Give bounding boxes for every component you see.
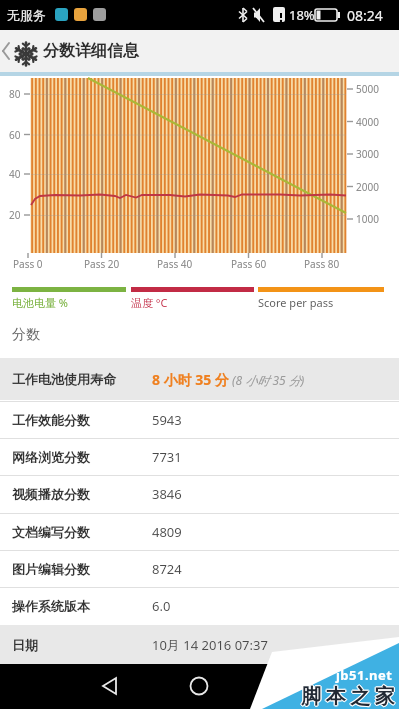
staticText: 5000 (356, 82, 379, 96)
staticText: 脚本之家 (299, 685, 397, 709)
staticText: 分数 (12, 326, 40, 344)
staticText: 无服务 (7, 7, 46, 23)
button[interactable] (270, 668, 306, 704)
staticText: 8 小时 35 分 (152, 370, 229, 389)
staticText: 5943 (152, 411, 182, 429)
staticText: 日期 (12, 637, 38, 653)
button[interactable]: 工作电池使用寿命 (0, 358, 399, 400)
staticText: 60 (9, 128, 21, 142)
staticText: 80 (9, 87, 21, 101)
button[interactable]: 工作效能分数 (0, 402, 399, 438)
button[interactable]: 日期 (0, 625, 399, 664)
staticText: Score per pass (258, 295, 334, 310)
staticText: Pass 60 (231, 257, 267, 271)
staticText: 脚本之家 (298, 684, 396, 709)
staticText: 电池电量 % (12, 295, 69, 310)
staticText: Pass 80 (304, 257, 340, 271)
staticText: 工作电池使用寿命 (12, 371, 116, 387)
staticText: 脚本之家 (299, 684, 397, 709)
button[interactable]: 文档编写分数 (0, 514, 399, 550)
staticText: Pass 0 (13, 257, 43, 271)
staticText: jb51.net (336, 666, 393, 684)
staticText: 分数详细信息 (43, 41, 139, 61)
button[interactable]: 图片编辑分数 (0, 551, 399, 587)
staticText: 3846 (152, 485, 182, 503)
staticText: 40 (9, 167, 21, 181)
staticText: Pass 40 (157, 257, 193, 271)
staticText: 08:24 (347, 6, 383, 25)
staticText: 1000 (356, 212, 379, 226)
staticText: 20 (9, 208, 21, 222)
staticText: 18% (289, 6, 315, 24)
staticText: 脚本之家 (300, 684, 398, 709)
button[interactable]: 视频播放分数 (0, 476, 399, 512)
staticText: 3000 (356, 147, 379, 161)
staticText: 文档编写分数 (12, 524, 90, 540)
staticText: Pass 20 (84, 257, 120, 271)
staticText: 2000 (356, 180, 379, 194)
staticText: 工作效能分数 (12, 412, 90, 428)
button[interactable]: 分数详细信息 (0, 30, 399, 72)
button[interactable] (181, 668, 217, 704)
staticText: 4000 (356, 115, 379, 129)
staticText: 6.0 (152, 597, 171, 615)
staticText: 4809 (152, 523, 182, 541)
button[interactable]: 网络浏览分数 (0, 439, 399, 475)
staticText: 网络浏览分数 (12, 449, 90, 465)
button[interactable] (92, 668, 128, 704)
staticText: (8 小时 35 分) (229, 372, 305, 388)
staticText: 图片编辑分数 (12, 561, 90, 577)
staticText: 视频播放分数 (12, 486, 90, 502)
staticText: 脚本之家 (299, 683, 397, 708)
staticText: 8724 (152, 560, 182, 578)
staticText: 10月 14 2016 07:37 (152, 636, 268, 654)
staticText: 7731 (152, 448, 182, 466)
button[interactable]: 操作系统版本 (0, 588, 399, 624)
staticText: 温度 °C (131, 295, 168, 310)
staticText: 操作系统版本 (12, 598, 90, 614)
